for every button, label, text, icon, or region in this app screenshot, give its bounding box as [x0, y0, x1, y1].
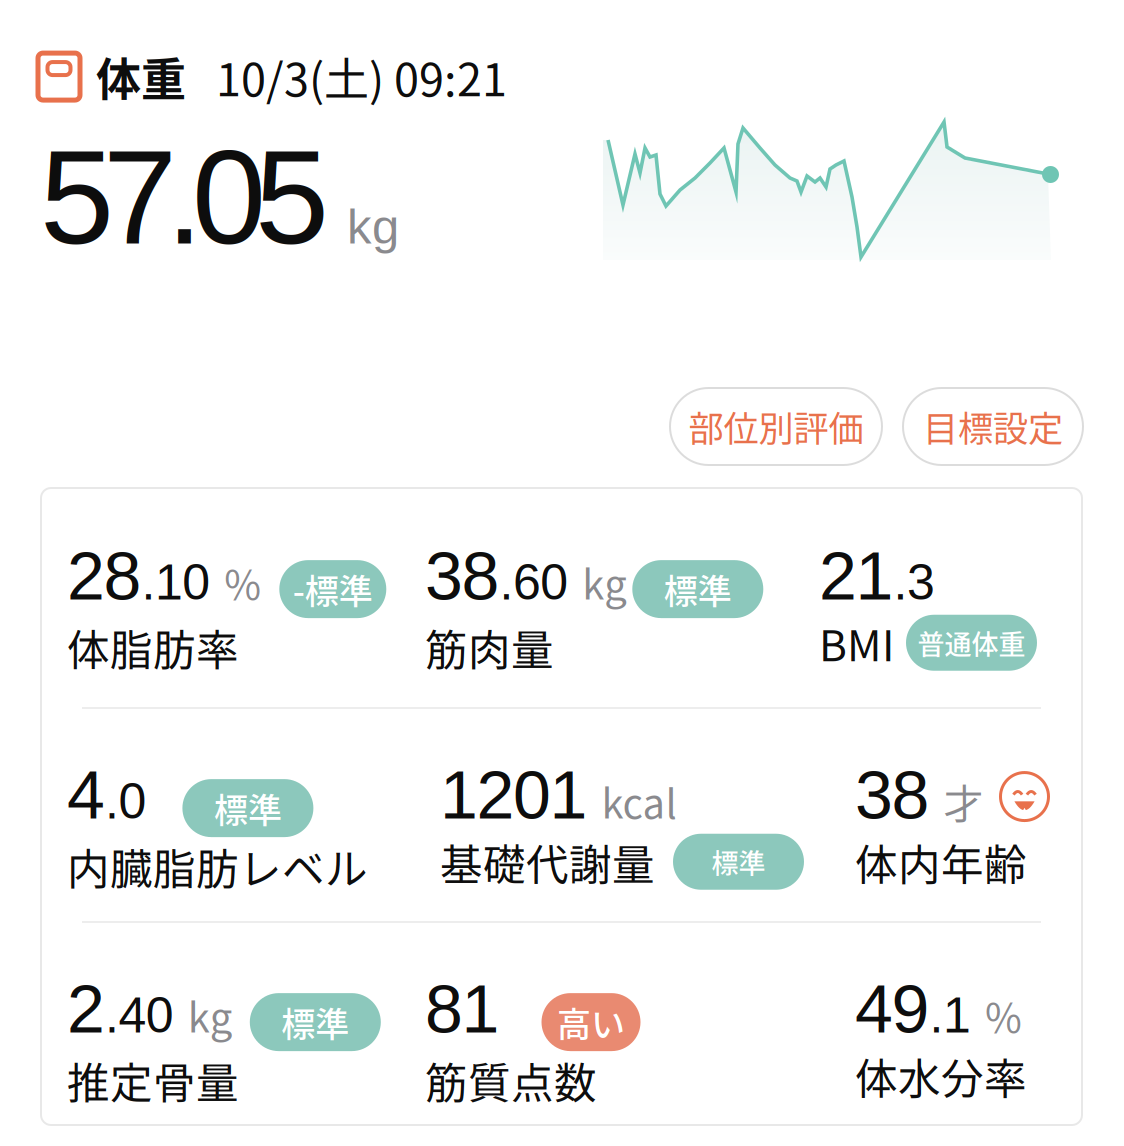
staticText: .0 [105, 773, 146, 829]
staticText: 38 [425, 538, 499, 614]
staticText: 標準 [281, 997, 349, 1047]
staticText: .60 [499, 554, 568, 610]
staticText: 81 [425, 971, 499, 1047]
staticText: kg [347, 199, 399, 254]
staticText: kg [582, 553, 627, 611]
staticText: 才 [943, 772, 983, 830]
staticText: 目標設定 [923, 401, 1063, 452]
staticText: 普通体重 [917, 623, 1025, 662]
staticText: 筋肉量 [425, 616, 554, 678]
staticText: 28 [67, 538, 141, 614]
staticText: 体内年齢 [855, 831, 1027, 892]
staticText: 2 [67, 971, 105, 1047]
staticText: 標準 [664, 564, 732, 614]
staticText: 体水分率 [855, 1045, 1027, 1106]
staticText: .1 [929, 987, 971, 1043]
staticText: 1201 [440, 757, 587, 833]
staticText: 57.05 [40, 123, 329, 272]
staticText: 高い [557, 997, 625, 1047]
staticText: kg [188, 986, 233, 1044]
staticText: .3 [893, 554, 935, 610]
staticText: 標準 [711, 842, 765, 881]
staticText: 4 [67, 757, 105, 833]
staticText: .40 [105, 987, 174, 1043]
staticText: 標準 [214, 783, 282, 833]
staticText: 38 [855, 757, 929, 833]
staticText: BMI [819, 612, 894, 673]
staticText: % [985, 986, 1022, 1044]
button[interactable]: 部位別評価 [670, 388, 882, 465]
button[interactable]: 目標設定 [903, 388, 1083, 465]
staticText: -標準 [293, 564, 373, 614]
staticText: kcal [601, 772, 676, 830]
staticText: 基礎代謝量 [440, 831, 655, 892]
staticText: .10 [141, 554, 210, 610]
staticText: 21 [819, 538, 893, 614]
staticText: 49 [855, 971, 929, 1047]
staticText: 体重 [96, 44, 186, 109]
staticText: 内臓脂肪レベル [67, 835, 368, 897]
staticText: 部位別評価 [688, 401, 863, 452]
staticText: 体脂肪率 [67, 616, 239, 678]
staticText: % [224, 553, 261, 611]
staticText: 10/3(土) 09:21 [216, 44, 507, 109]
staticText: 筋質点数 [425, 1049, 597, 1111]
staticText: 推定骨量 [67, 1049, 239, 1111]
